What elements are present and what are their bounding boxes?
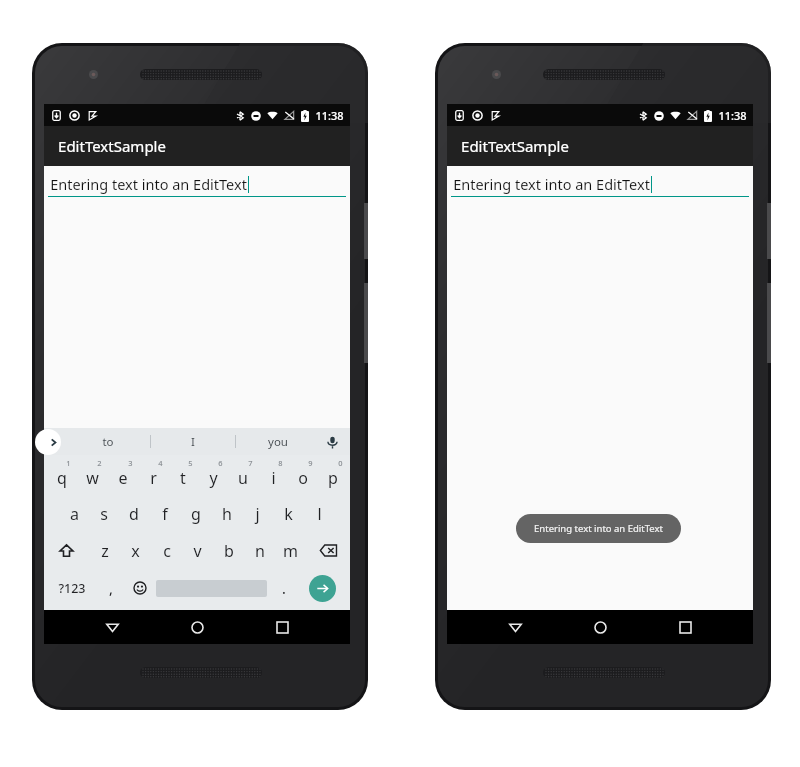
button[interactable]: z (89, 532, 120, 569)
button[interactable]: s (89, 495, 119, 532)
button[interactable]: you (236, 428, 320, 455)
staticText: Entering text into an EditText (534, 522, 663, 535)
button[interactable]: b (213, 532, 244, 569)
staticText: 7 (248, 458, 253, 468)
staticText: 11:38 (718, 108, 747, 123)
button[interactable]: Back (498, 610, 532, 644)
staticText: q (57, 467, 67, 489)
button[interactable]: 5 (168, 455, 198, 495)
staticText: i (271, 467, 276, 489)
staticText: u (238, 467, 248, 489)
button[interactable]: Recents (265, 610, 299, 644)
staticText: x (131, 540, 140, 562)
staticText: y (209, 467, 218, 489)
button[interactable]: a (59, 495, 89, 532)
button[interactable]: h (211, 495, 242, 532)
button[interactable]: 7 (228, 455, 258, 495)
staticText: , (109, 579, 113, 598)
staticText: 0 (338, 458, 343, 468)
staticText: EditTextSample (58, 136, 166, 156)
button[interactable]: k (273, 495, 304, 532)
staticText: Entering text into an EditText (453, 174, 650, 194)
button[interactable]: Back (95, 610, 129, 644)
staticText: r (150, 467, 157, 489)
staticText: o (298, 467, 308, 489)
button[interactable]: l (304, 495, 335, 532)
button[interactable]: Emoji (125, 569, 154, 607)
staticText: c (163, 540, 171, 562)
staticText: 5 (188, 458, 193, 468)
button[interactable]: . (269, 569, 298, 607)
button[interactable]: I (151, 428, 235, 455)
staticText: 1 (66, 458, 71, 468)
button[interactable]: 1 (46, 455, 77, 495)
button[interactable]: Recents (668, 610, 702, 644)
button[interactable]: Home (180, 610, 214, 644)
button[interactable]: 8 (258, 455, 288, 495)
staticText: j (255, 503, 260, 525)
button[interactable]: Entering text into an EditText (451, 174, 749, 197)
staticText: EditTextSample (461, 136, 569, 156)
button[interactable]: Shift (44, 532, 89, 569)
button[interactable]: 0 (318, 455, 348, 495)
staticText: 11:38 (315, 108, 344, 123)
staticText: 2 (97, 458, 102, 468)
button[interactable]: x (120, 532, 151, 569)
staticText: you (268, 434, 288, 450)
button[interactable]: to (66, 428, 150, 455)
staticText: w (86, 467, 99, 489)
staticText: Entering text into an EditText (50, 174, 247, 194)
button[interactable]: ?123 (48, 569, 96, 607)
button[interactable]: d (119, 495, 149, 532)
button[interactable]: More suggestions (35, 429, 61, 455)
staticText: e (118, 467, 128, 489)
staticText: k (284, 503, 293, 525)
button[interactable]: Delete (306, 532, 350, 569)
staticText: . (282, 579, 286, 598)
button[interactable]: 9 (288, 455, 318, 495)
staticText: 8 (278, 458, 283, 468)
staticText: 4 (158, 458, 163, 468)
staticText: v (193, 540, 202, 562)
button[interactable]: Home (583, 610, 617, 644)
button[interactable]: 3 (108, 455, 138, 495)
staticText: d (129, 503, 139, 525)
staticText: 3 (128, 458, 133, 468)
staticText: f (162, 503, 168, 525)
staticText: g (191, 503, 201, 525)
staticText: 6 (218, 458, 223, 468)
button[interactable]: 4 (138, 455, 168, 495)
button[interactable]: n (244, 532, 275, 569)
staticText: t (180, 467, 186, 489)
button[interactable]: m (275, 532, 306, 569)
button[interactable]: g (180, 495, 211, 532)
button[interactable]: Entering text into an EditText (516, 514, 681, 543)
button[interactable]: v (182, 532, 213, 569)
staticText: l (317, 503, 322, 525)
staticText: to (102, 434, 114, 450)
button[interactable]: j (242, 495, 273, 532)
button[interactable]: , (96, 569, 125, 607)
staticText: p (328, 467, 338, 489)
staticText: z (101, 540, 109, 562)
button[interactable]: c (151, 532, 182, 569)
staticText: I (191, 434, 195, 450)
button[interactable]: Enter (298, 569, 346, 607)
button[interactable]: 2 (77, 455, 108, 495)
button[interactable]: Entering text into an EditText (48, 174, 346, 197)
staticText: m (283, 540, 298, 562)
staticText: s (100, 503, 108, 525)
staticText: n (255, 540, 265, 562)
staticText: 9 (308, 458, 313, 468)
staticText: b (224, 540, 234, 562)
staticText: ?123 (58, 580, 86, 597)
staticText: h (222, 503, 232, 525)
button[interactable]: 6 (198, 455, 228, 495)
staticText: a (70, 503, 79, 525)
button[interactable]: Voice input (322, 432, 342, 452)
button[interactable]: f (149, 495, 180, 532)
